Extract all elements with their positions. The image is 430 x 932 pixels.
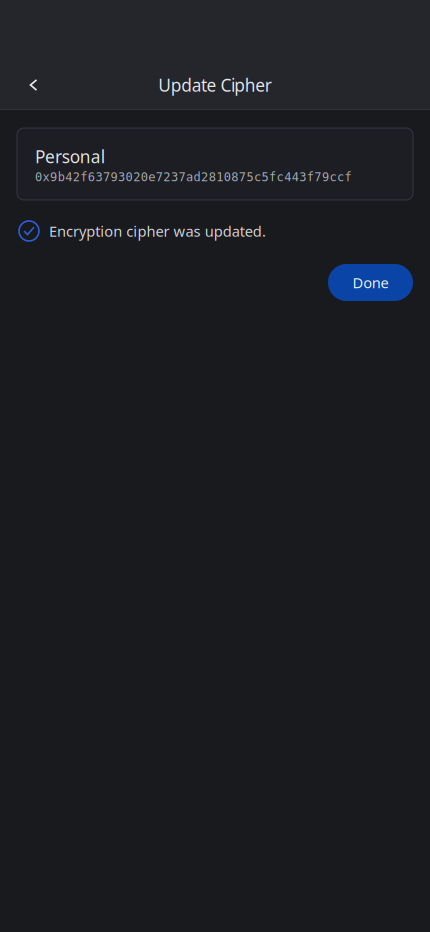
button[interactable]: Back	[20, 63, 47, 107]
staticText: Encryption cipher was updated.	[49, 221, 266, 241]
staticText: Done	[352, 273, 388, 292]
staticText: Personal	[35, 145, 105, 168]
button[interactable]: Done	[328, 264, 413, 301]
staticText: Update Cipher	[158, 73, 272, 96]
staticText: 0x9b42f63793020e7237ad2810875c5fc443f79c…	[35, 170, 351, 184]
